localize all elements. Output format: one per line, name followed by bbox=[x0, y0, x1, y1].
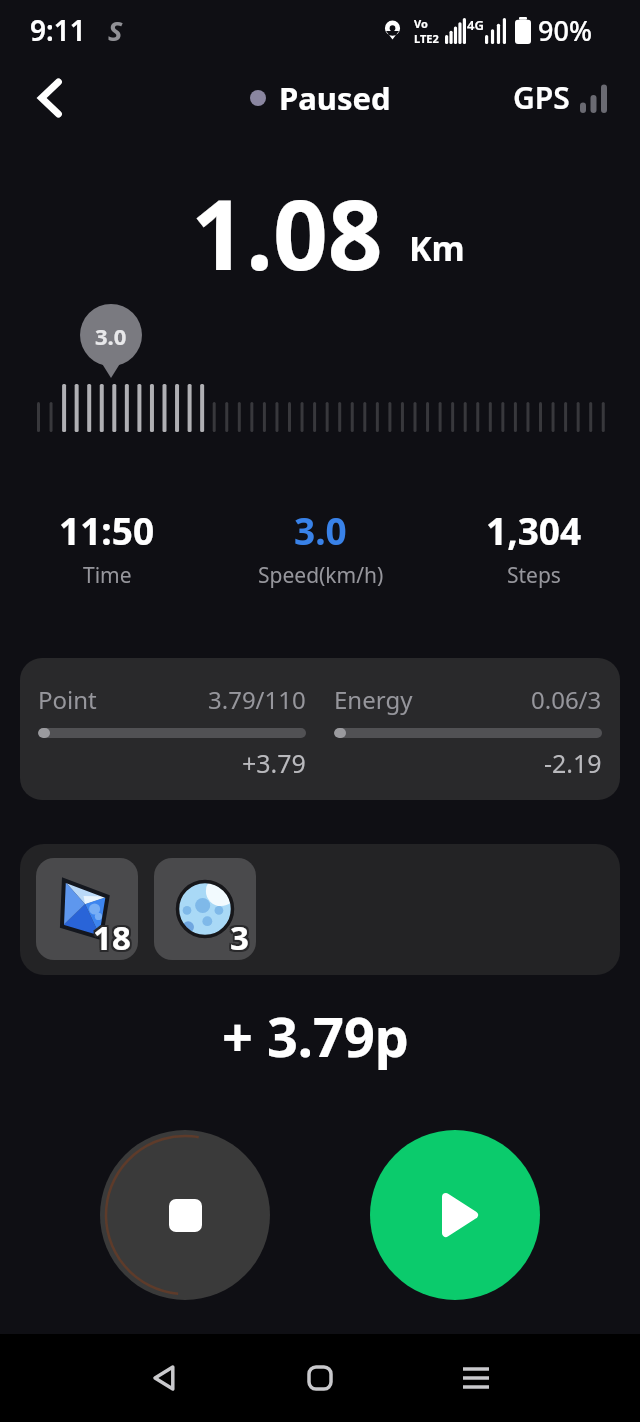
staticText: 0.06/3 bbox=[531, 683, 602, 716]
staticText: Point bbox=[38, 683, 97, 716]
staticText: 3.0 bbox=[95, 321, 127, 351]
staticText: 18 bbox=[91, 915, 129, 960]
staticText: 9:11 bbox=[30, 11, 86, 49]
staticText: 3 bbox=[228, 915, 247, 960]
button[interactable]: 18 bbox=[36, 858, 138, 960]
staticText: 3 bbox=[230, 917, 249, 960]
staticText: 18 bbox=[95, 915, 133, 960]
staticText: 3 bbox=[230, 915, 249, 960]
staticText: Km bbox=[409, 225, 465, 271]
staticText: LTE2 bbox=[414, 31, 439, 46]
staticText: 1,304 bbox=[486, 505, 582, 555]
staticText: Time bbox=[83, 561, 132, 590]
staticText: Vo bbox=[414, 16, 428, 31]
staticText: 18 bbox=[93, 915, 131, 960]
staticText: S bbox=[108, 12, 123, 49]
staticText: Speed(km/h) bbox=[258, 561, 384, 590]
staticText: 3 bbox=[232, 915, 251, 960]
staticText: Energy bbox=[334, 683, 413, 716]
staticText: 90% bbox=[538, 12, 592, 49]
staticText: 18 bbox=[95, 913, 133, 958]
staticText: + 3.79p bbox=[222, 999, 409, 1073]
button[interactable]: GPS bbox=[513, 77, 608, 118]
staticText: +3.79 bbox=[242, 746, 306, 780]
staticText: 3 bbox=[228, 917, 247, 960]
button[interactable] bbox=[296, 1354, 344, 1402]
button[interactable] bbox=[370, 1130, 540, 1300]
staticText: Paused bbox=[279, 77, 391, 119]
staticText: 3 bbox=[228, 913, 247, 958]
staticText: 18 bbox=[93, 913, 131, 958]
button[interactable] bbox=[28, 76, 72, 120]
staticText: 3.79/110 bbox=[208, 683, 306, 716]
staticText: -2.19 bbox=[544, 746, 602, 780]
button[interactable]: Point bbox=[38, 658, 602, 800]
staticText: 18 bbox=[91, 913, 129, 958]
staticText: 11:50 bbox=[59, 505, 155, 555]
staticText: 4G bbox=[467, 16, 484, 34]
staticText: 3 bbox=[230, 913, 249, 958]
button[interactable] bbox=[100, 1130, 270, 1300]
staticText: Steps bbox=[507, 561, 561, 590]
button[interactable]: 3 bbox=[154, 858, 256, 960]
staticText: 18 bbox=[91, 917, 129, 960]
staticText: 1.08 bbox=[191, 167, 383, 298]
staticText: 18 bbox=[95, 917, 133, 960]
button[interactable] bbox=[452, 1354, 500, 1402]
button[interactable]: Paused bbox=[250, 77, 391, 119]
button[interactable] bbox=[140, 1354, 188, 1402]
staticText: 3.0 bbox=[294, 505, 347, 555]
staticText: 18 bbox=[93, 917, 131, 960]
staticText: GPS bbox=[513, 77, 570, 118]
staticText: 3 bbox=[232, 917, 251, 960]
staticText: 3 bbox=[232, 913, 251, 958]
